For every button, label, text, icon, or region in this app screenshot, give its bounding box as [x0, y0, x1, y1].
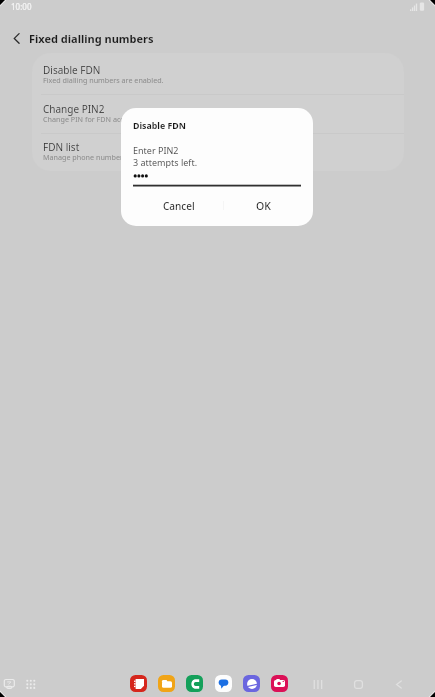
staticText: Disable FDN: [43, 63, 101, 77]
button[interactable]: Recent apps: [308, 674, 328, 694]
button[interactable]: Camera: [271, 675, 288, 692]
staticText: OK: [256, 199, 271, 213]
staticText: 10:00: [11, 1, 32, 12]
button[interactable]: OK: [224, 193, 302, 219]
staticText: FDN list: [43, 140, 80, 154]
staticText: 3 attempts left.: [133, 156, 198, 168]
button[interactable]: Messages: [215, 675, 232, 692]
button[interactable]: Internet: [243, 675, 260, 692]
button[interactable]: Apps: [22, 674, 40, 692]
button[interactable]: Disable FDN: [32, 53, 404, 93]
button[interactable]: Samsung Notes: [130, 675, 147, 692]
button[interactable]: Change PIN2: [32, 92, 404, 131]
staticText: Fixed dialling numbers: [29, 31, 154, 46]
button[interactable]: Recent screens: [0, 674, 19, 693]
staticText: Change PIN for FDN access.: [43, 114, 137, 124]
staticText: Cancel: [163, 199, 195, 213]
button[interactable]: Cancel: [135, 193, 223, 219]
staticText: Change PIN2: [43, 102, 105, 116]
button[interactable]: My Files: [158, 675, 175, 692]
button[interactable]: Phone: [186, 675, 203, 692]
button[interactable]: FDN list: [32, 130, 404, 169]
staticText: Disable FDN: [133, 120, 186, 132]
staticText: Manage phone numbers.: [43, 152, 129, 162]
button[interactable]: Back: [389, 674, 409, 694]
staticText: Enter PIN2: [133, 144, 179, 156]
button[interactable]: Navigate up: [5, 27, 27, 49]
staticText: Fixed dialling numbers are enabled.: [43, 75, 164, 85]
button[interactable]: Home: [348, 674, 368, 694]
